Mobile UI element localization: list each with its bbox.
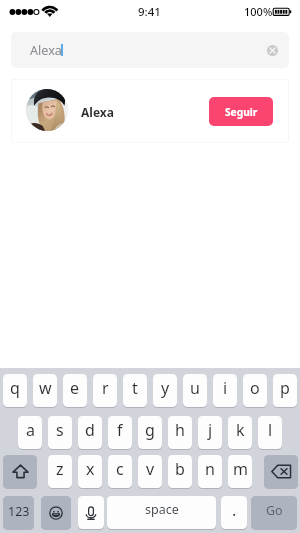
button[interactable]: 123: [3, 496, 34, 529]
button[interactable]: space: [107, 496, 216, 529]
staticText: t: [132, 377, 138, 399]
staticText: a: [26, 419, 35, 441]
staticText: g: [145, 419, 155, 441]
button[interactable]: v: [138, 455, 162, 488]
staticText: q: [10, 377, 20, 399]
staticText: y: [161, 377, 170, 399]
button[interactable]: a: [18, 416, 42, 449]
button[interactable]: Clear text: [262, 40, 282, 60]
button[interactable]: s: [48, 416, 72, 449]
button[interactable]: r: [93, 374, 117, 407]
button[interactable]: j: [198, 416, 222, 449]
staticText: r: [102, 377, 109, 399]
button[interactable]: x: [78, 455, 102, 488]
staticText: space: [145, 501, 179, 518]
button[interactable]: q: [3, 374, 27, 407]
button[interactable]: b: [168, 455, 192, 488]
button[interactable]: .: [221, 496, 247, 529]
staticText: c: [116, 458, 124, 480]
staticText: l: [268, 419, 273, 441]
button[interactable]: c: [108, 455, 132, 488]
button[interactable]: Alexa: [11, 32, 289, 68]
staticText: s: [56, 419, 64, 441]
staticText: m: [233, 458, 248, 480]
button[interactable]: Seguir: [209, 97, 273, 126]
button[interactable]: l: [258, 416, 282, 449]
staticText: 123: [8, 503, 30, 520]
button[interactable]: m: [228, 455, 252, 488]
button[interactable]: e: [63, 374, 87, 407]
button[interactable]: t: [123, 374, 147, 407]
staticText: Seguir: [225, 105, 258, 119]
button[interactable]: Alexa: [11, 79, 289, 143]
staticText: Alexa: [81, 104, 114, 120]
button[interactable]: z: [48, 455, 72, 488]
button[interactable]: o: [243, 374, 267, 407]
staticText: j: [208, 419, 213, 441]
button[interactable]: Delete: [264, 455, 298, 488]
button[interactable]: Emoji: [41, 496, 71, 529]
staticText: w: [39, 377, 52, 399]
staticText: .: [232, 499, 237, 521]
button[interactable]: w: [33, 374, 57, 407]
button[interactable]: u: [183, 374, 207, 407]
button[interactable]: y: [153, 374, 177, 407]
staticText: d: [85, 419, 95, 441]
button[interactable]: f: [108, 416, 132, 449]
staticText: z: [56, 458, 64, 480]
button[interactable]: g: [138, 416, 162, 449]
staticText: x: [86, 458, 95, 480]
staticText: u: [190, 377, 200, 399]
staticText: v: [146, 458, 155, 480]
staticText: 100%: [244, 4, 273, 19]
button[interactable]: p: [273, 374, 297, 407]
staticText: f: [117, 419, 123, 441]
staticText: n: [205, 458, 215, 480]
button[interactable]: k: [228, 416, 252, 449]
staticText: 9:41: [138, 4, 161, 20]
staticText: o: [250, 377, 260, 399]
button[interactable]: Dictate: [78, 496, 104, 529]
staticText: k: [236, 419, 245, 441]
button[interactable]: n: [198, 455, 222, 488]
button[interactable]: i: [213, 374, 237, 407]
button[interactable]: d: [78, 416, 102, 449]
staticText: p: [280, 377, 290, 399]
staticText: e: [70, 377, 80, 399]
staticText: b: [175, 458, 185, 480]
button[interactable]: Shift: [3, 455, 37, 488]
button[interactable]: h: [168, 416, 192, 449]
staticText: Go: [266, 502, 283, 519]
staticText: h: [175, 419, 185, 441]
staticText: Alexa: [30, 42, 62, 59]
staticText: i: [223, 377, 228, 399]
button[interactable]: Go: [251, 496, 297, 529]
